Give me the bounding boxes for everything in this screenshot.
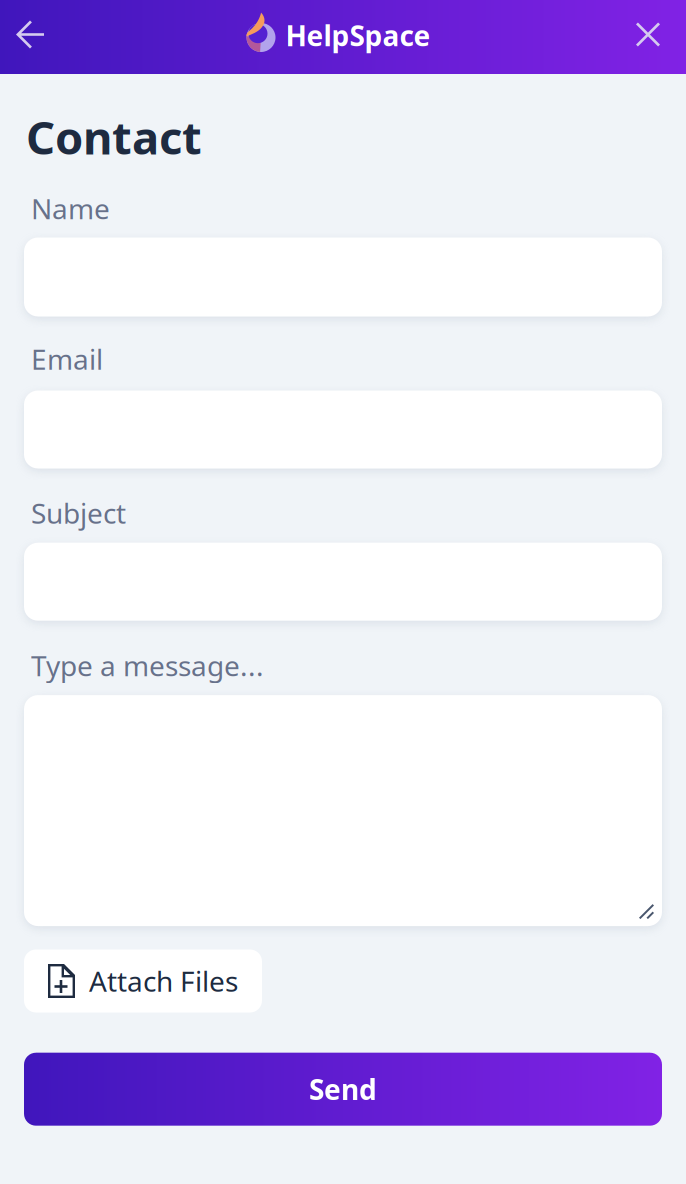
button[interactable]: Attach Files (24, 949, 262, 1012)
button[interactable]: Send (24, 1053, 662, 1126)
staticText: Type a message... (31, 647, 264, 684)
button[interactable]: Close (623, 6, 673, 67)
staticText: Attach Files (89, 962, 238, 1000)
staticText: Send (309, 1071, 377, 1108)
staticText: Subject (31, 494, 126, 531)
staticText: HelpSpace (285, 17, 430, 54)
button[interactable]: Back (4, 6, 58, 67)
staticText: Email (31, 340, 103, 378)
staticText: Contact (26, 107, 202, 167)
staticText: Name (31, 190, 110, 227)
